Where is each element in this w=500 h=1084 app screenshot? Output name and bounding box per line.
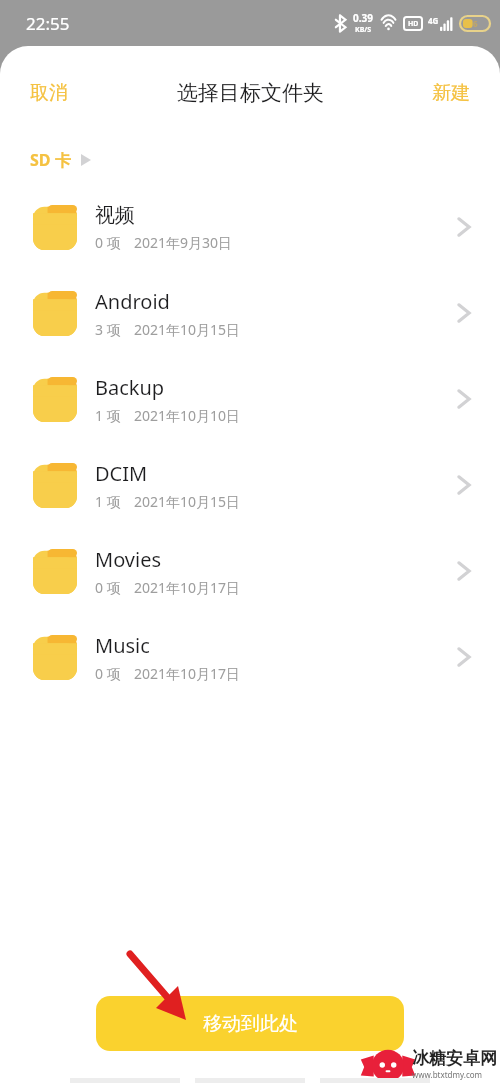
staticText: 2021年9月30日 bbox=[134, 233, 233, 252]
staticText: Backup bbox=[95, 374, 165, 401]
staticText: 3 项 bbox=[95, 320, 121, 339]
staticText: 移动到此处 bbox=[203, 1012, 298, 1036]
other: Open folder bbox=[456, 645, 472, 669]
staticText: 冰糖安卓网 bbox=[412, 1048, 497, 1069]
staticText: 0 项 bbox=[95, 233, 121, 252]
staticText: SD 卡 bbox=[30, 149, 71, 171]
staticText: 选择目标文件夹 bbox=[177, 80, 324, 106]
button[interactable]: Backup bbox=[0, 356, 500, 442]
other: Open folder bbox=[456, 559, 472, 583]
staticText: Music bbox=[95, 632, 150, 659]
button[interactable]: 新建 bbox=[418, 73, 484, 113]
staticText: HD bbox=[408, 19, 419, 29]
staticText: 2021年10月17日 bbox=[134, 664, 241, 683]
staticText: 0.39 bbox=[353, 11, 373, 25]
staticText: 6 bbox=[473, 18, 478, 29]
button[interactable]: 取消 bbox=[16, 73, 82, 113]
staticText: 2021年10月15日 bbox=[134, 492, 241, 511]
staticText: DCIM bbox=[95, 460, 148, 487]
other: Open folder bbox=[456, 473, 472, 497]
button[interactable]: Movies bbox=[0, 528, 500, 614]
button[interactable]: DCIM bbox=[0, 442, 500, 528]
staticText: 1 项 bbox=[95, 406, 121, 425]
staticText: 2021年10月10日 bbox=[134, 406, 241, 425]
staticText: 0 项 bbox=[95, 578, 121, 597]
button[interactable]: SD 卡 bbox=[16, 140, 105, 180]
other: Open folder bbox=[456, 301, 472, 325]
button[interactable]: Music bbox=[0, 614, 500, 700]
staticText: www.btxtdmy.com bbox=[412, 1069, 483, 1080]
button[interactable]: 视频 bbox=[0, 184, 500, 270]
staticText: 2021年10月15日 bbox=[134, 320, 241, 339]
staticText: 2021年10月17日 bbox=[134, 578, 241, 597]
staticText: Android bbox=[95, 288, 170, 315]
staticText: 1 项 bbox=[95, 492, 121, 511]
other: Open folder bbox=[456, 387, 472, 411]
other: Open folder bbox=[456, 215, 472, 239]
staticText: 视频 bbox=[95, 203, 135, 228]
staticText: Movies bbox=[95, 546, 162, 573]
staticText: 22:55 bbox=[26, 12, 70, 35]
staticText: KB/S bbox=[355, 25, 372, 35]
button[interactable]: Android bbox=[0, 270, 500, 356]
button[interactable]: 移动到此处 bbox=[96, 996, 404, 1051]
staticText: 4G bbox=[428, 15, 439, 26]
staticText: 取消 bbox=[30, 81, 68, 105]
staticText: 新建 bbox=[432, 81, 470, 105]
staticText: 0 项 bbox=[95, 664, 121, 683]
